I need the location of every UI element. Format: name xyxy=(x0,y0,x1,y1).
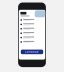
staticText: Continue xyxy=(25,50,39,54)
button[interactable]: Continue xyxy=(21,50,43,54)
